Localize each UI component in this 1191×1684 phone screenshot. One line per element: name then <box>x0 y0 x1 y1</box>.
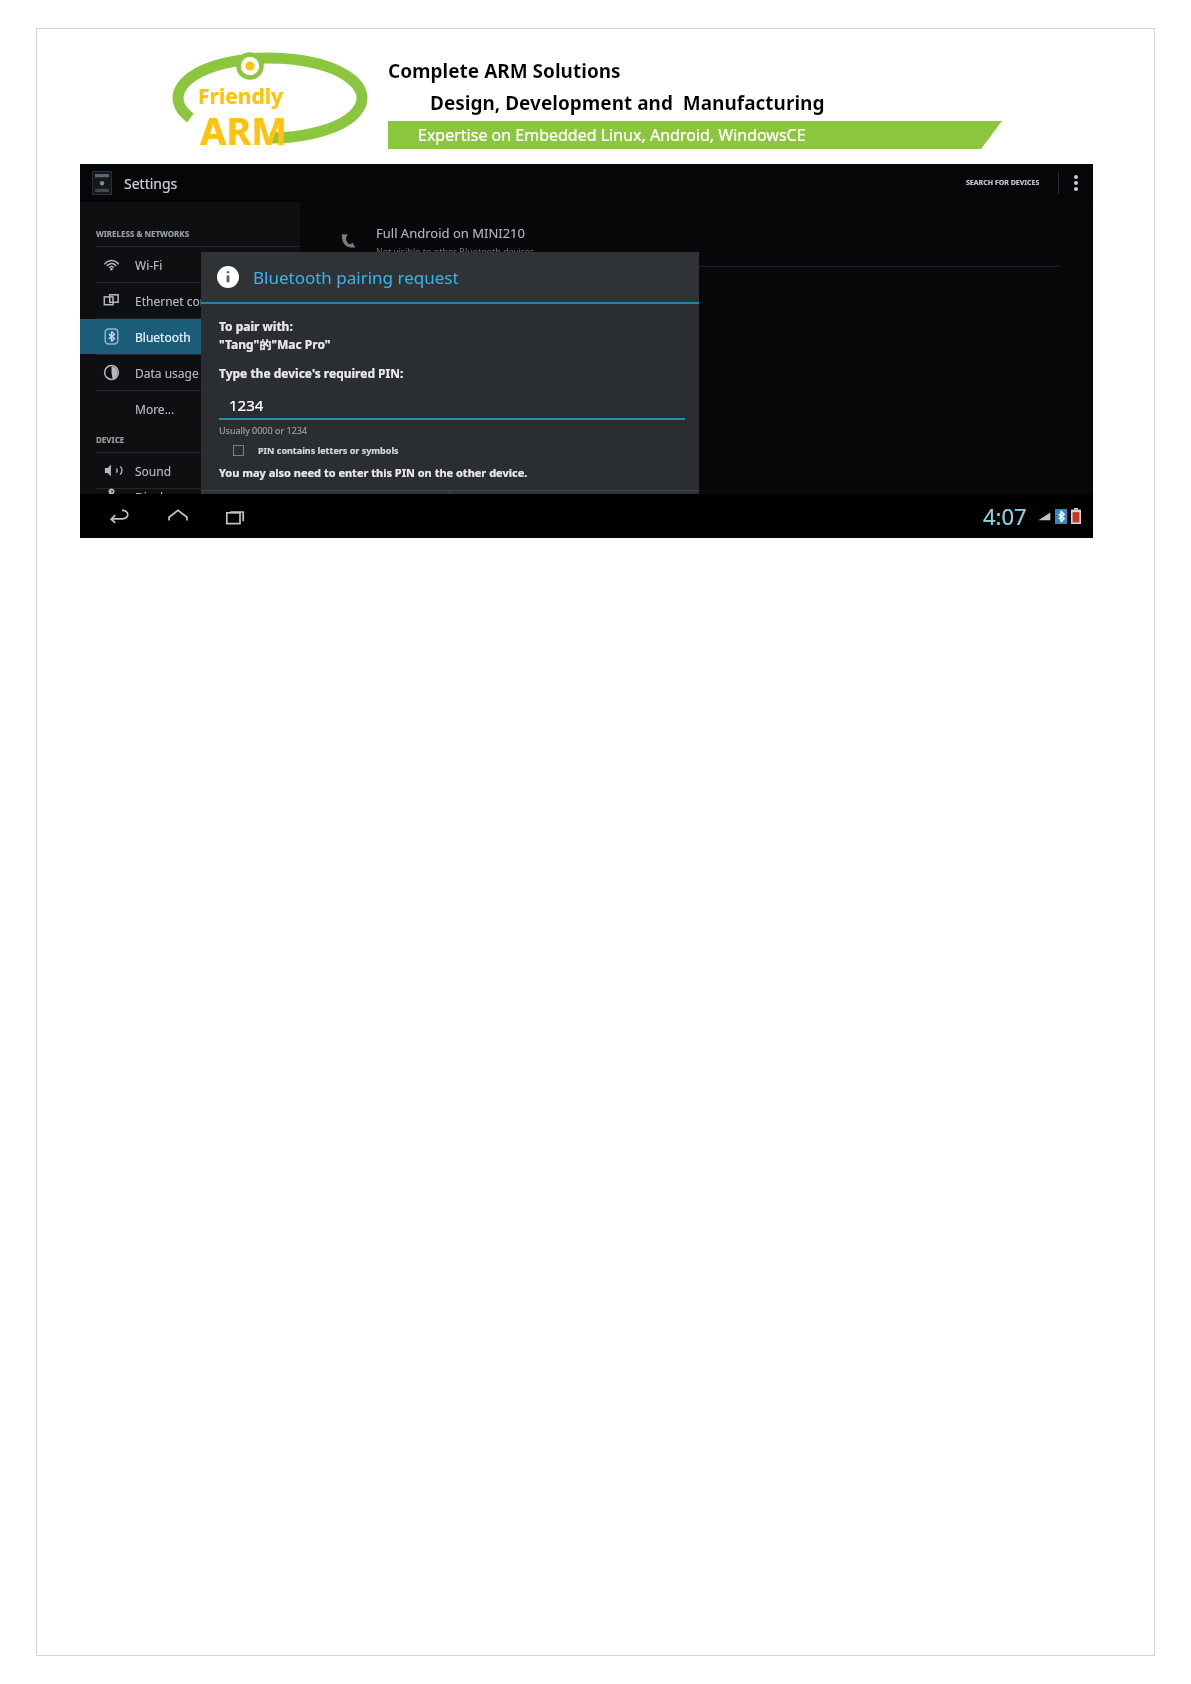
staticText: Sound <box>135 463 172 479</box>
staticText: To pair with: <box>219 318 293 334</box>
staticText: Friendly <box>198 82 283 111</box>
button[interactable]: Bluetooth <box>80 319 300 354</box>
button[interactable]: PIN contains letters or symbols <box>219 442 405 458</box>
staticText: Usually 0000 or 1234 <box>219 424 308 436</box>
other: Settings app icon <box>92 171 112 195</box>
button[interactable]: Home <box>156 494 200 538</box>
button[interactable]: Full Android on MINI210 <box>300 214 1093 266</box>
staticText: Full Android on MINI210 <box>376 224 525 242</box>
staticText: 1234 <box>229 395 264 415</box>
staticText: Bluetooth <box>135 329 191 345</box>
staticText: Data usage <box>135 365 199 381</box>
staticText: Settings <box>124 174 178 193</box>
staticText: "Tang"的"Mac Pro" <box>219 336 331 352</box>
staticText: 4:07 <box>983 501 1027 531</box>
button[interactable]: Display <box>80 489 300 494</box>
button[interactable]: SEARCH FOR DEVICES <box>958 170 1048 196</box>
staticText: ARM <box>200 104 288 150</box>
button[interactable]: Sound <box>80 453 300 488</box>
button[interactable]: Ethernet conf <box>80 283 300 318</box>
staticText: Complete ARM Solutions <box>388 58 621 84</box>
staticText: Display <box>135 489 176 494</box>
button[interactable]: Recent apps <box>214 494 258 538</box>
button[interactable]: 1234 <box>219 395 685 420</box>
button[interactable]: Back <box>98 494 142 538</box>
staticText: Wi-Fi <box>135 257 163 273</box>
staticText: SEARCH FOR DEVICES <box>966 178 1040 188</box>
staticText: PIN contains letters or symbols <box>258 444 399 456</box>
staticText: Not visible to other Bluetooth devices <box>376 245 535 257</box>
staticText: Bluetooth pairing request <box>253 266 459 289</box>
staticText: You may also need to enter this PIN on t… <box>219 465 528 480</box>
button[interactable]: More options <box>1059 164 1093 202</box>
staticText: DEVICE <box>96 434 125 445</box>
button[interactable]: Wi-Fi <box>80 247 300 282</box>
staticText: Design, Development and Manufacturing <box>430 90 825 116</box>
staticText: Type the device's required PIN: <box>219 365 404 381</box>
staticText: Expertise on Embedded Linux, Android, Wi… <box>418 124 806 146</box>
button[interactable]: Data usage <box>80 355 300 390</box>
staticText: More... <box>135 401 175 417</box>
button[interactable]: More... <box>80 391 300 426</box>
staticText: WIRELESS & NETWORKS <box>96 228 190 239</box>
staticText: Ethernet conf <box>135 293 212 309</box>
